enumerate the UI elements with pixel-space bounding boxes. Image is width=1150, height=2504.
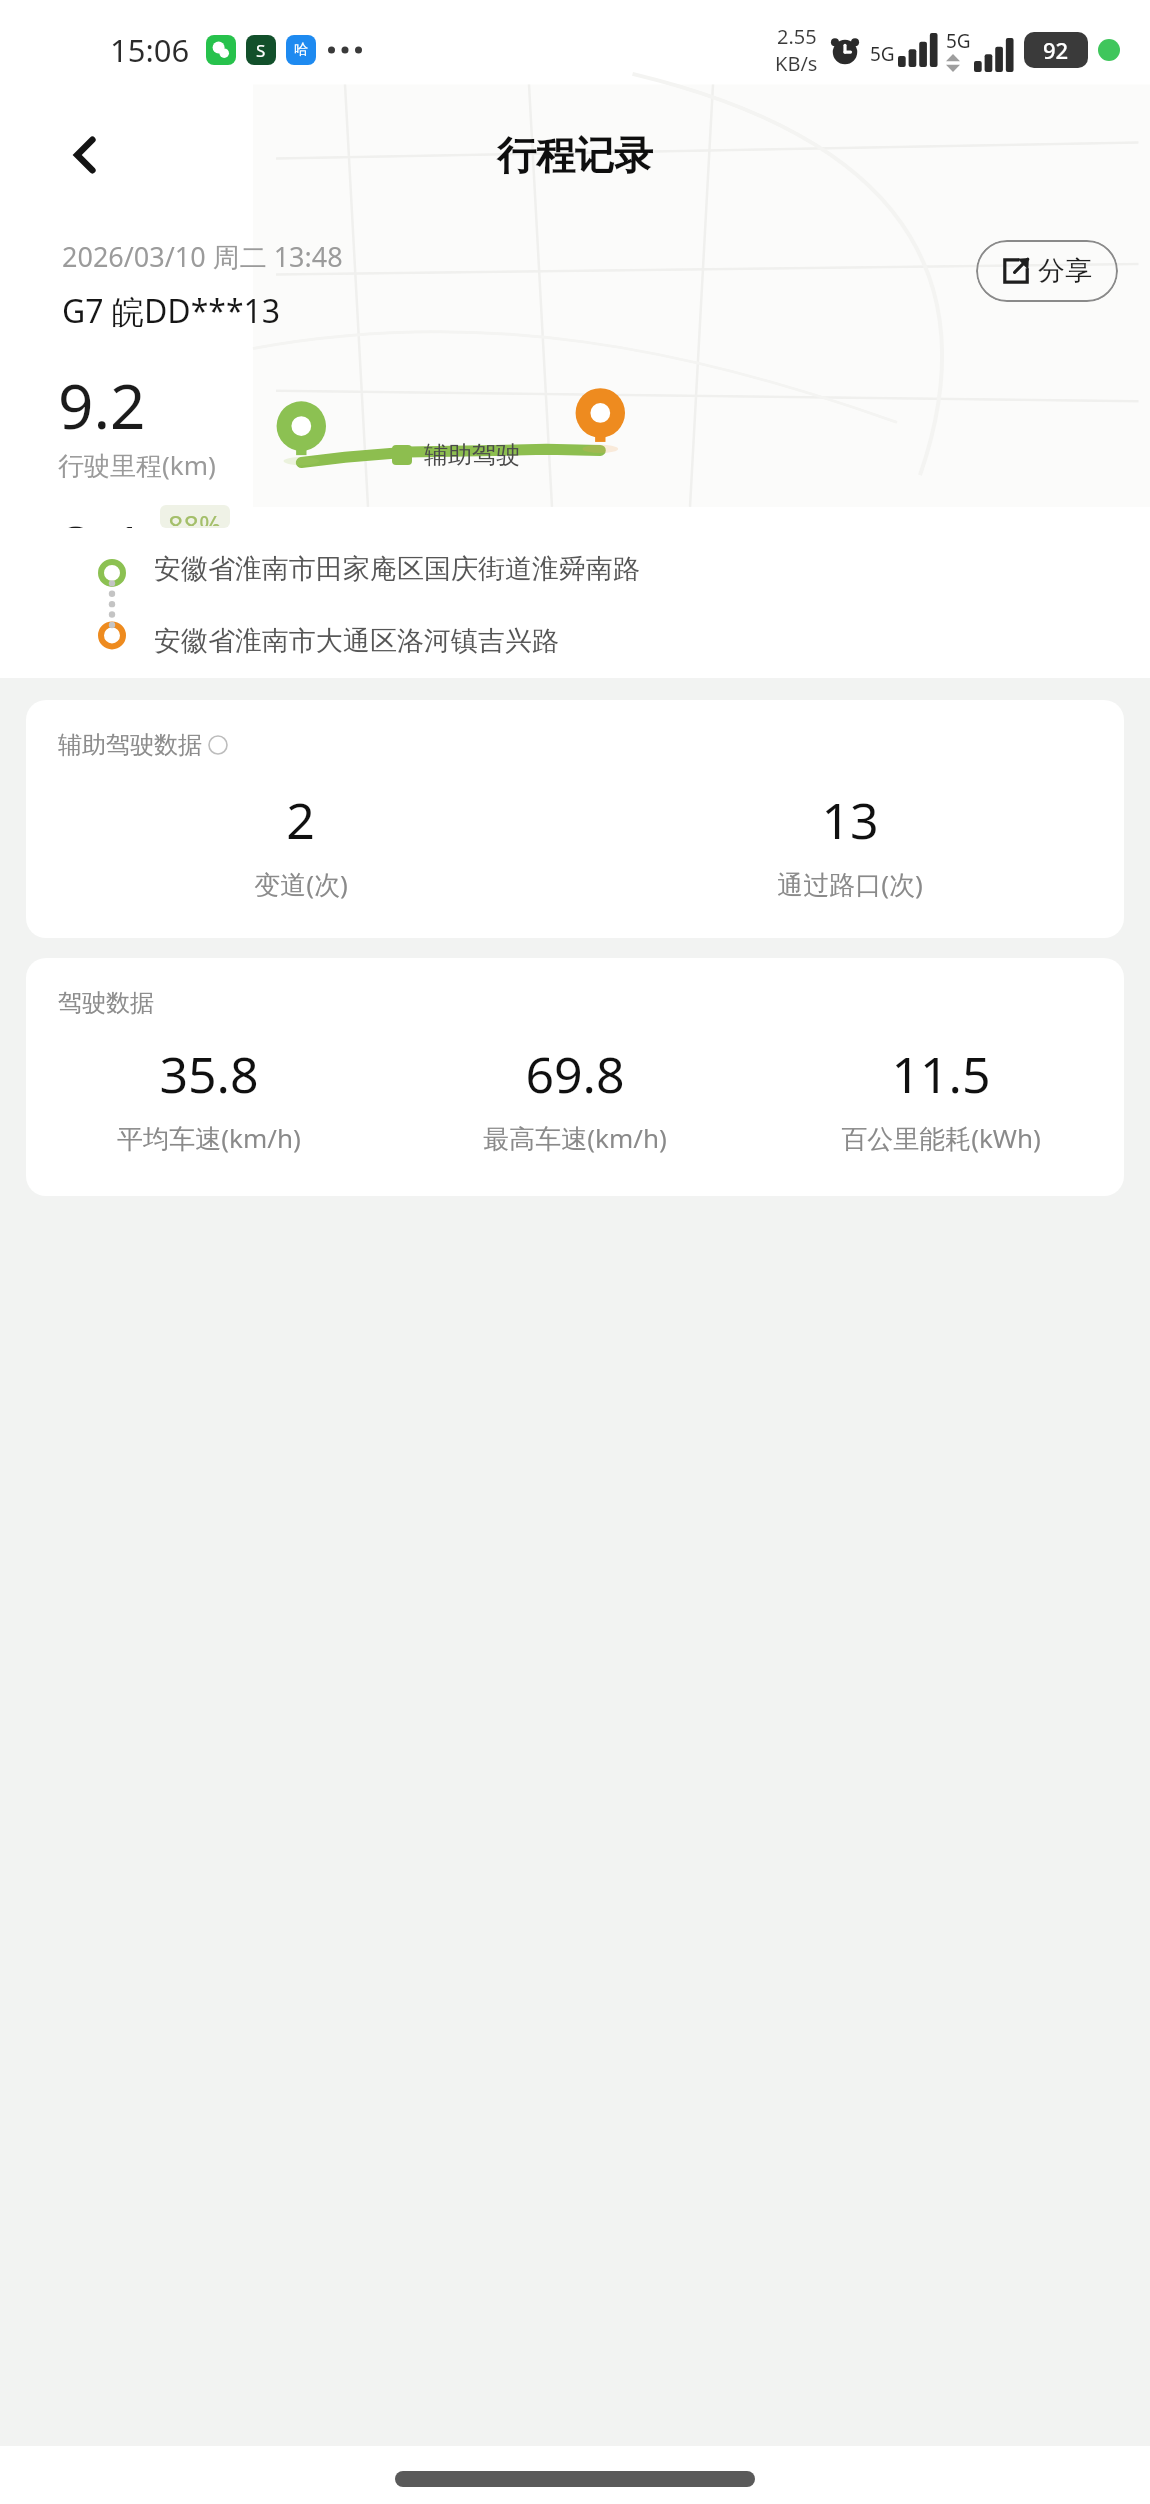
staticText: 变道(次) — [254, 866, 348, 902]
staticText: S — [256, 39, 266, 62]
staticText: 13 — [821, 786, 879, 854]
staticText: 分享 — [1038, 254, 1092, 288]
staticText: 15:06 — [110, 29, 190, 71]
staticText: 行程记录 — [497, 131, 653, 180]
staticText: G7 皖DD***13 — [62, 289, 281, 333]
staticText: 百公里能耗(kWh) — [841, 1120, 1041, 1156]
staticText: 2.55 — [777, 23, 817, 50]
staticText: 11.5 — [891, 1040, 991, 1108]
button[interactable]: Back — [50, 119, 122, 191]
staticText: 92 — [1043, 35, 1069, 65]
staticText: KB/s — [775, 50, 818, 77]
staticText: 最高车速(km/h) — [483, 1120, 667, 1156]
staticText: 5G — [870, 41, 895, 67]
staticText: 驾驶数据 — [58, 988, 154, 1018]
staticText: 8.1 — [58, 505, 146, 528]
button[interactable]: 驾驶数据 — [26, 958, 1124, 1196]
button[interactable]: 分享 — [976, 240, 1118, 302]
staticText: 88% — [168, 507, 222, 526]
staticText: 行驶里程(km) — [58, 447, 216, 483]
staticText: 哈 — [294, 41, 308, 59]
button[interactable]: 辅助驾驶数据 — [26, 700, 1124, 938]
staticText: 辅助驾驶 — [424, 440, 520, 470]
staticText: 辅助驾驶数据 — [58, 730, 202, 760]
staticText: 2026/03/10 周二 13:48 — [62, 238, 343, 275]
staticText: 平均车速(km/h) — [117, 1120, 301, 1156]
staticText: 安徽省淮南市田家庵区国庆街道淮舜南路 — [154, 552, 640, 586]
staticText: 69.8 — [525, 1040, 625, 1108]
staticText: 9.2 — [58, 363, 146, 447]
staticText: 2 — [286, 786, 315, 854]
staticText: 35.8 — [159, 1040, 259, 1108]
staticText: 安徽省淮南市大通区洛河镇吉兴路 — [154, 624, 559, 658]
staticText: 通过路口(次) — [777, 866, 923, 902]
staticText: 5G — [946, 28, 971, 54]
